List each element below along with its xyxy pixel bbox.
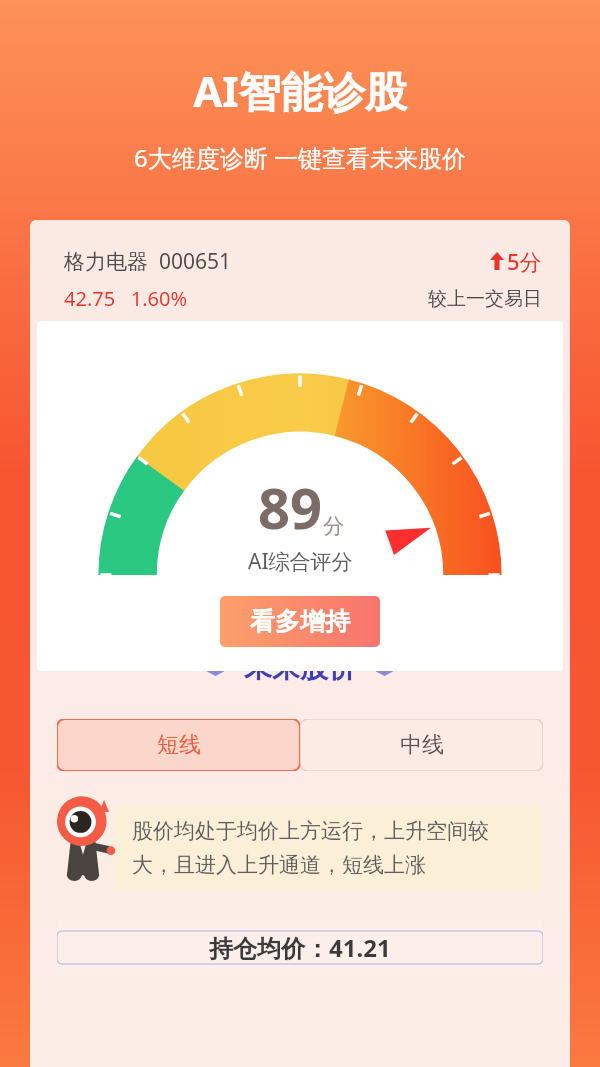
staticText: 分 bbox=[323, 513, 344, 539]
staticText: 持仓均价：41.21 bbox=[209, 931, 391, 964]
staticText: 5分 bbox=[507, 246, 542, 276]
button[interactable]: 看多增持 bbox=[220, 596, 380, 647]
button[interactable]: 中线 bbox=[300, 719, 543, 771]
staticText: 较上一交易日 bbox=[428, 287, 542, 311]
other: 助手形象 bbox=[52, 799, 114, 881]
staticText: 格力电器 000651 bbox=[64, 247, 231, 276]
button[interactable]: 格力电器 000651 bbox=[30, 220, 570, 330]
staticText: 看多增持 bbox=[250, 606, 350, 637]
staticText: AI综合评分 bbox=[248, 547, 353, 576]
button[interactable]: 持仓均价：41.21 bbox=[57, 919, 543, 976]
staticText: AI智能诊股 bbox=[193, 62, 407, 119]
staticText: 6大维度诊断 一键查看未来股价 bbox=[134, 141, 466, 174]
button[interactable]: 短线 bbox=[57, 719, 300, 771]
staticText: 未来股价 bbox=[244, 650, 356, 685]
staticText: 89 bbox=[258, 469, 323, 545]
staticText: 42.75 1.60% bbox=[64, 285, 188, 312]
staticText: 中线 bbox=[400, 731, 444, 759]
staticText: 股价均处于均价上方运行，上升空间较大，且进入上升通道，短线上涨 bbox=[132, 818, 524, 878]
staticText: 短线 bbox=[157, 731, 201, 759]
